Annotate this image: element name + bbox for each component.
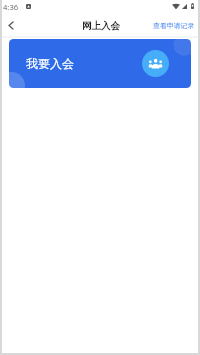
button[interactable]: Back — [2, 14, 20, 36]
staticText: 网上入会 — [82, 20, 120, 32]
staticText: 4:36 — [3, 2, 19, 12]
staticText: 我要入会 — [26, 56, 74, 71]
staticText: 查看申请记录 — [153, 21, 195, 30]
button[interactable]: 查看申请记录 — [149, 17, 200, 34]
other: Members — [149, 58, 162, 69]
button[interactable]: 我要入会 — [9, 39, 191, 88]
